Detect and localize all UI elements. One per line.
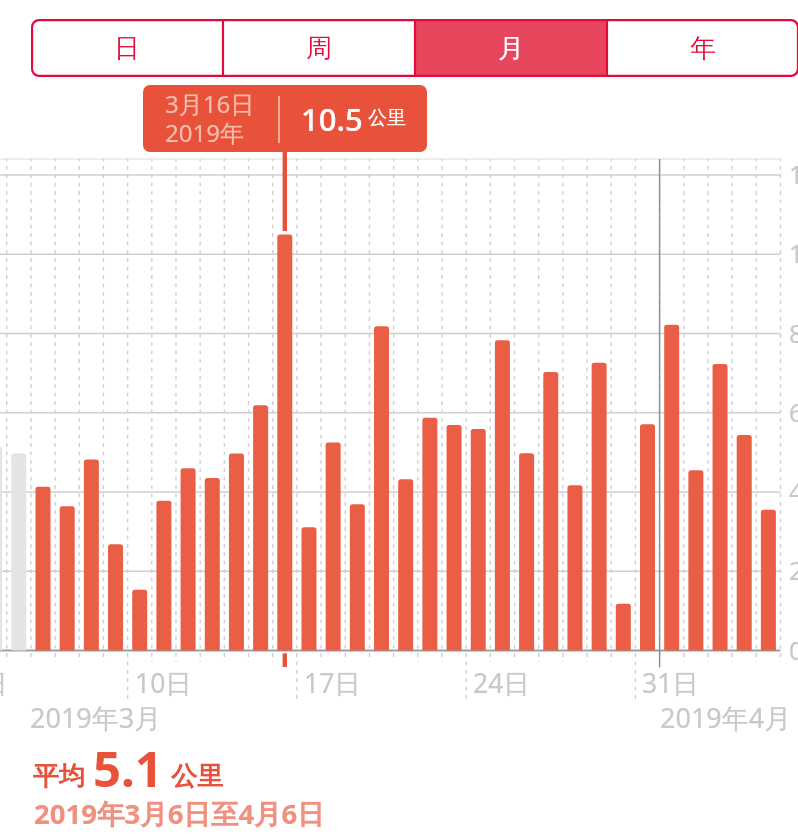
staticText: 日 <box>114 32 140 65</box>
staticText: 10.5 <box>301 98 363 140</box>
staticText: 12 <box>789 157 798 191</box>
button[interactable]: 月 <box>415 19 607 77</box>
staticText: 0 <box>789 633 798 667</box>
staticText: 2019年 <box>165 116 244 149</box>
staticText: 周 <box>306 32 332 65</box>
staticText: 2019年4月 <box>660 699 792 736</box>
staticText: 5.1 <box>93 735 163 802</box>
staticText: 公里 <box>171 760 223 793</box>
button[interactable]: 3月16日 <box>143 85 427 152</box>
staticText: 4 <box>789 474 798 508</box>
staticText: 8 <box>789 316 798 350</box>
staticText: 17日 <box>304 665 361 701</box>
staticText: 2 <box>789 553 798 587</box>
staticText: 3月16日 <box>165 87 255 120</box>
button[interactable]: 周 <box>223 19 415 77</box>
staticText: 31日 <box>642 665 699 701</box>
staticText: 10 <box>789 236 798 270</box>
staticText: 6 <box>789 395 798 429</box>
staticText: 公里 <box>368 106 406 130</box>
staticText: 月 <box>498 32 524 65</box>
staticText: 2019年3月6日至4月6日 <box>34 795 325 833</box>
button[interactable]: 每日跑步距离柱状图 <box>0 159 798 700</box>
staticText: 10日 <box>135 665 192 701</box>
staticText: 3日 <box>0 665 8 701</box>
staticText: 2019年3月 <box>30 699 162 736</box>
button[interactable]: 年 <box>607 19 798 77</box>
staticText: 年 <box>690 32 716 65</box>
button[interactable]: 日 <box>31 19 223 77</box>
staticText: 平均 <box>33 760 85 793</box>
staticText: 24日 <box>473 665 530 701</box>
